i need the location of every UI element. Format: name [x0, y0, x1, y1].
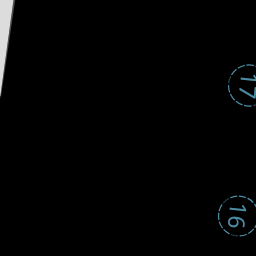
button[interactable]: Step 16: [0, 0, 256, 256]
button[interactable]: Step 17: [0, 0, 256, 256]
button[interactable]: Previous page: [0, 0, 256, 256]
